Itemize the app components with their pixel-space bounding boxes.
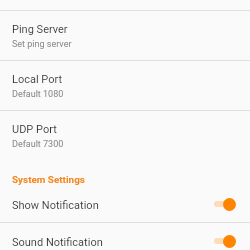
staticText: Set ping server — [12, 39, 72, 50]
button[interactable]: UDP Port — [0, 111, 250, 160]
staticText: Default 1080 — [12, 89, 64, 100]
button[interactable]: Show Notification toggle, on — [214, 194, 236, 214]
staticText: Local Port — [12, 73, 63, 86]
button[interactable]: Local Port — [0, 61, 250, 110]
staticText: System Settings — [12, 174, 85, 186]
button[interactable]: Sound Notification — [0, 223, 250, 250]
staticText: Ping Server — [12, 23, 68, 36]
button[interactable]: Ping Server — [0, 11, 250, 60]
button[interactable]: Sound Notification toggle, on — [214, 231, 236, 250]
staticText: Sound Notification — [12, 236, 103, 249]
staticText: UDP Port — [12, 123, 57, 136]
button[interactable]: Show Notification — [0, 186, 250, 222]
staticText: Show Notification — [12, 199, 99, 212]
staticText: Default 7300 — [12, 139, 64, 150]
